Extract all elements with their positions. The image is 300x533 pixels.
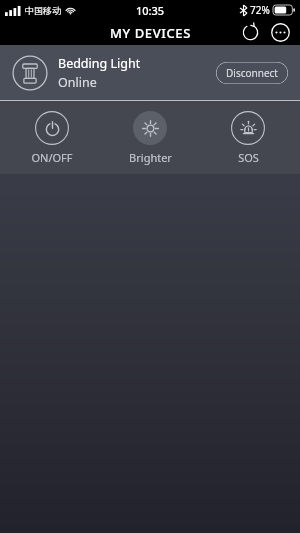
staticText: 10:35: [136, 3, 165, 18]
button[interactable]: Bedding Light: [0, 45, 300, 100]
button[interactable]: ON/OFF: [6, 107, 98, 169]
staticText: Online: [58, 74, 97, 91]
button[interactable]: More options: [266, 20, 294, 45]
button[interactable]: Refresh: [236, 20, 264, 45]
staticText: 72%: [250, 3, 270, 17]
staticText: MY DEVICES: [110, 24, 191, 42]
staticText: ON/OFF: [31, 150, 73, 165]
staticText: Brighter: [129, 150, 172, 165]
button[interactable]: SOS: [202, 107, 294, 169]
button[interactable]: Brighter: [104, 107, 196, 169]
staticText: Bedding Light: [58, 55, 141, 72]
staticText: 中国移动: [25, 5, 61, 16]
button[interactable]: Disconnect: [216, 62, 288, 84]
staticText: SOS: [238, 150, 259, 165]
staticText: Disconnect: [226, 66, 278, 80]
